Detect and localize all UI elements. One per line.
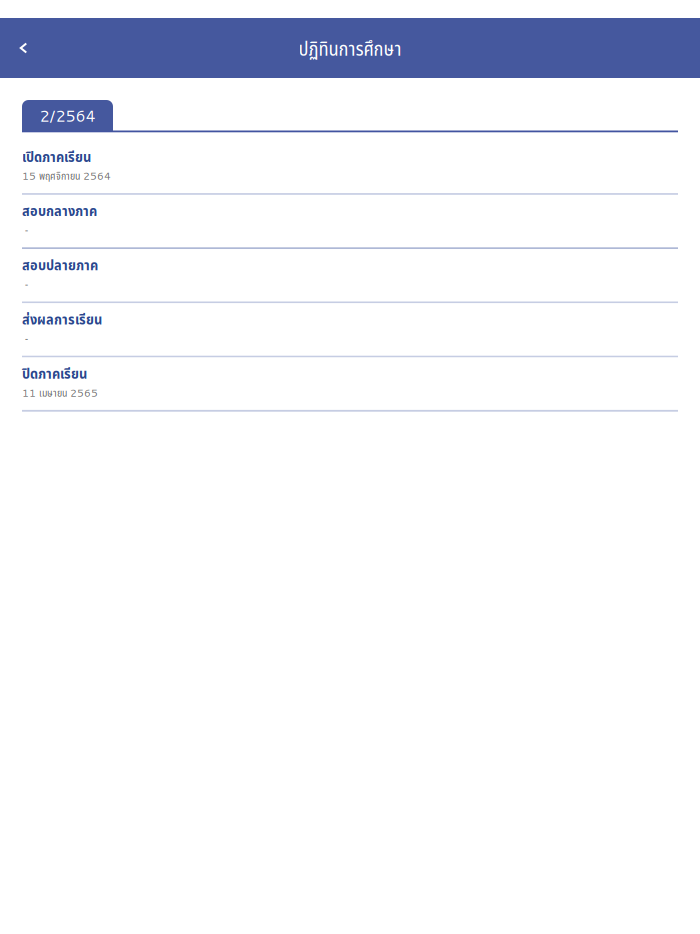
- button[interactable]: ปิดภาคเรียน: [22, 357, 678, 412]
- staticText: 15 พฤศจิกายน 2564: [22, 168, 111, 183]
- staticText: -: [25, 331, 28, 345]
- staticText: สอบปลายภาค: [22, 255, 98, 275]
- staticText: สอบกลางภาค: [22, 200, 97, 220]
- staticText: ส่งผลการเรียน: [22, 309, 102, 329]
- staticText: -: [25, 277, 28, 291]
- button[interactable]: สอบกลางภาค: [22, 195, 678, 249]
- button[interactable]: เปิดภาคเรียน: [22, 141, 678, 195]
- button[interactable]: Back: [1, 26, 45, 70]
- staticText: เปิดภาคเรียน: [22, 146, 91, 166]
- staticText: -: [25, 222, 28, 237]
- button[interactable]: 2/2564: [22, 100, 113, 131]
- staticText: 11 เมษายน 2565: [22, 385, 98, 400]
- staticText: 2/2564: [39, 104, 95, 127]
- staticText: ปฏิทินการศึกษา: [298, 34, 401, 62]
- staticText: ปิดภาคเรียน: [22, 363, 87, 383]
- button[interactable]: ส่งผลการเรียน: [22, 303, 678, 357]
- button[interactable]: สอบปลายภาค: [22, 249, 678, 303]
